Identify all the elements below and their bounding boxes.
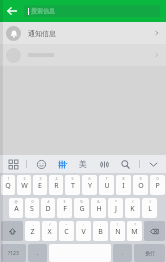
button[interactable]: :	[76, 221, 91, 241]
staticText: 美	[79, 159, 87, 169]
staticText: 3	[39, 176, 42, 181]
button[interactable]: ?	[127, 221, 142, 241]
staticText: 6	[88, 176, 91, 181]
staticText: %	[80, 199, 83, 204]
staticText: Z	[30, 227, 35, 237]
staticText: ,	[37, 250, 39, 257]
staticText: P	[155, 181, 160, 191]
button[interactable]: 5	[65, 175, 80, 195]
staticText: 8	[122, 176, 125, 181]
staticText: 换行	[145, 250, 155, 256]
staticText: K	[130, 204, 135, 214]
button[interactable]: 4	[49, 175, 63, 195]
staticText: X	[47, 227, 52, 237]
button[interactable]: ~	[59, 221, 74, 241]
button[interactable]: 0	[25, 198, 39, 218]
staticText: $	[63, 199, 66, 204]
button[interactable]: Back	[3, 2, 21, 20]
button[interactable]: Search	[117, 156, 133, 172]
button[interactable]: Backspace	[144, 221, 165, 241]
button[interactable]: 搜索信息	[24, 5, 160, 17]
button[interactable]: 换行	[134, 244, 165, 262]
button[interactable]: Voice input	[96, 156, 112, 172]
staticText: /	[49, 222, 51, 227]
staticText: U	[104, 181, 110, 191]
button[interactable]: #	[41, 198, 55, 218]
button[interactable]: 3	[33, 175, 47, 195]
staticText: B	[98, 227, 103, 237]
button[interactable]: %	[74, 198, 89, 218]
staticText: R	[54, 181, 59, 191]
staticText: F	[63, 204, 67, 214]
staticText: ~	[65, 222, 68, 227]
staticText: A	[14, 204, 19, 214]
staticText: 2	[23, 176, 26, 181]
staticText: 7	[105, 176, 108, 181]
button[interactable]: 美	[75, 156, 91, 172]
staticText: 4	[55, 176, 58, 181]
staticText: 搜索信息	[31, 7, 55, 15]
button[interactable]: 2	[17, 175, 31, 195]
staticText: @	[14, 199, 18, 204]
staticText: O	[138, 181, 144, 191]
button[interactable]	[0, 44, 166, 66]
staticText: T	[71, 181, 75, 191]
button[interactable]: 6	[82, 175, 97, 195]
staticText: V	[81, 227, 86, 237]
staticText: ?123	[8, 250, 19, 257]
button[interactable]: Hide keyboard	[145, 156, 161, 172]
button[interactable]: 1	[1, 175, 15, 195]
staticText: &	[97, 199, 100, 204]
staticText: Y	[88, 181, 92, 191]
button[interactable]: 8	[116, 175, 131, 195]
staticText: (	[132, 199, 134, 204]
button[interactable]: Keyboard layouts	[5, 156, 21, 172]
button[interactable]: (	[125, 198, 140, 218]
staticText: H	[96, 204, 102, 214]
staticText: -	[32, 222, 34, 227]
staticText: G	[79, 204, 85, 214]
staticText: M	[131, 227, 138, 237]
staticText: W	[21, 181, 28, 191]
button[interactable]: ;	[93, 221, 108, 241]
staticText: #	[47, 199, 50, 204]
button[interactable]: -	[25, 221, 40, 241]
staticText: N	[115, 227, 121, 237]
button[interactable]: ?123	[1, 244, 26, 262]
button[interactable]: Emoji	[33, 156, 49, 172]
staticText: 0	[31, 199, 34, 204]
staticText: E	[38, 181, 42, 191]
staticText: )	[149, 199, 151, 204]
button[interactable]: !	[110, 221, 125, 241]
staticText: 5	[71, 176, 74, 181]
staticText: I	[122, 181, 125, 191]
button[interactable]: &	[91, 198, 106, 218]
button[interactable]: 7	[99, 175, 114, 195]
staticText: 0	[156, 176, 159, 181]
staticText: ?	[134, 222, 136, 227]
button[interactable]: *	[108, 198, 123, 218]
button[interactable]: $	[57, 198, 72, 218]
button[interactable]: @	[9, 198, 23, 218]
staticText: 9	[139, 176, 142, 181]
button[interactable]: /	[42, 221, 57, 241]
staticText: Q	[5, 181, 11, 191]
staticText: *	[115, 199, 117, 204]
staticText: !	[117, 222, 118, 227]
button[interactable]: Shift	[1, 221, 23, 241]
button[interactable]: 9	[133, 175, 148, 195]
staticText: 通知信息	[28, 29, 56, 38]
button[interactable]: 通知信息	[0, 22, 166, 44]
staticText: ;	[100, 222, 101, 227]
button[interactable]: Pinyin input	[54, 156, 70, 172]
button[interactable]: )	[142, 198, 157, 218]
staticText: :	[83, 222, 84, 227]
staticText: 1	[7, 176, 10, 181]
staticText: D	[45, 204, 51, 214]
staticText: J	[115, 204, 117, 214]
button[interactable]: 0	[150, 175, 165, 195]
staticText: C	[64, 227, 69, 237]
